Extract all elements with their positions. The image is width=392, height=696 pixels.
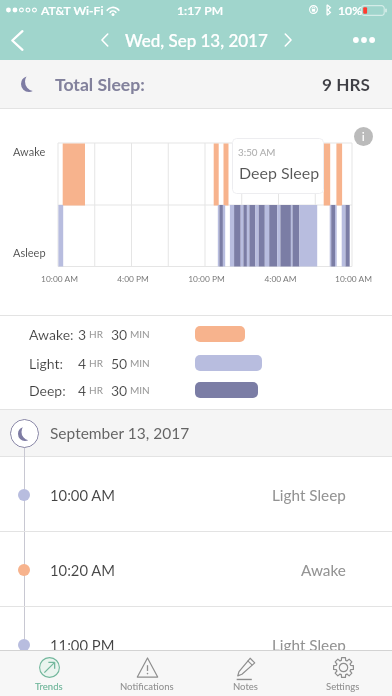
button[interactable]: Back — [0, 20, 35, 60]
staticText: 10:00 PM — [188, 274, 225, 284]
staticText: Settings — [326, 681, 360, 692]
staticText: AT&T Wi-Fi — [41, 3, 104, 18]
staticText: 1:17 PM — [177, 3, 224, 18]
staticText: MIN — [130, 357, 150, 369]
button[interactable]: 10:00 AM — [0, 457, 392, 532]
staticText: HR — [89, 384, 103, 396]
staticText: 11:00 PM — [50, 636, 115, 654]
staticText: 10:20 AM — [50, 561, 116, 579]
staticText: Light Sleep — [272, 486, 346, 504]
staticText: HR — [89, 328, 103, 340]
button[interactable]: 11:00 PM — [0, 607, 392, 682]
button[interactable]: Settings — [294, 650, 392, 696]
staticText: Trends — [35, 681, 63, 692]
button[interactable]: Previous day — [85, 23, 125, 57]
staticText: 4 — [78, 355, 87, 371]
button[interactable]: Trends — [0, 650, 98, 696]
staticText: 3 — [78, 326, 87, 342]
button[interactable]: 10:20 AM — [0, 532, 392, 607]
staticText: Deep: — [29, 382, 66, 398]
staticText: Asleep — [13, 246, 46, 259]
staticText: 10:00 AM — [335, 274, 372, 284]
staticText: HR — [89, 357, 103, 369]
staticText: 4:00 PM — [117, 274, 149, 284]
button[interactable]: Info — [354, 127, 373, 146]
button[interactable]: Notifications — [98, 650, 196, 696]
staticText: September 13, 2017 — [50, 424, 190, 443]
staticText: Notes — [233, 681, 258, 692]
staticText: i — [362, 130, 365, 143]
staticText: 9 HRS — [322, 74, 370, 95]
staticText: Total Sleep: — [55, 74, 145, 95]
button[interactable]: More options — [336, 20, 392, 60]
staticText: 10% — [338, 3, 363, 18]
staticText: Awake: — [29, 326, 74, 342]
staticText: Deep Sleep — [239, 163, 320, 182]
staticText: 4:00 AM — [264, 274, 297, 284]
staticText: Light Sleep — [272, 636, 346, 654]
staticText: 10:00 AM — [41, 274, 78, 284]
staticText: Awake — [13, 145, 46, 158]
staticText: 30 — [111, 326, 128, 342]
button[interactable]: Notes — [196, 650, 294, 696]
staticText: Awake — [301, 561, 346, 579]
staticText: 50 — [111, 355, 128, 371]
staticText: MIN — [130, 384, 150, 396]
staticText: 3:50 AM — [238, 146, 276, 158]
staticText: Light: — [29, 355, 64, 371]
staticText: Notifications — [120, 681, 174, 692]
staticText: Wed, Sep 13, 2017 — [125, 30, 268, 50]
staticText: 30 — [111, 382, 128, 398]
staticText: 10:00 AM — [50, 486, 116, 504]
staticText: MIN — [130, 328, 150, 340]
button[interactable]: Next day — [268, 23, 308, 57]
staticText: 4 — [78, 382, 87, 398]
